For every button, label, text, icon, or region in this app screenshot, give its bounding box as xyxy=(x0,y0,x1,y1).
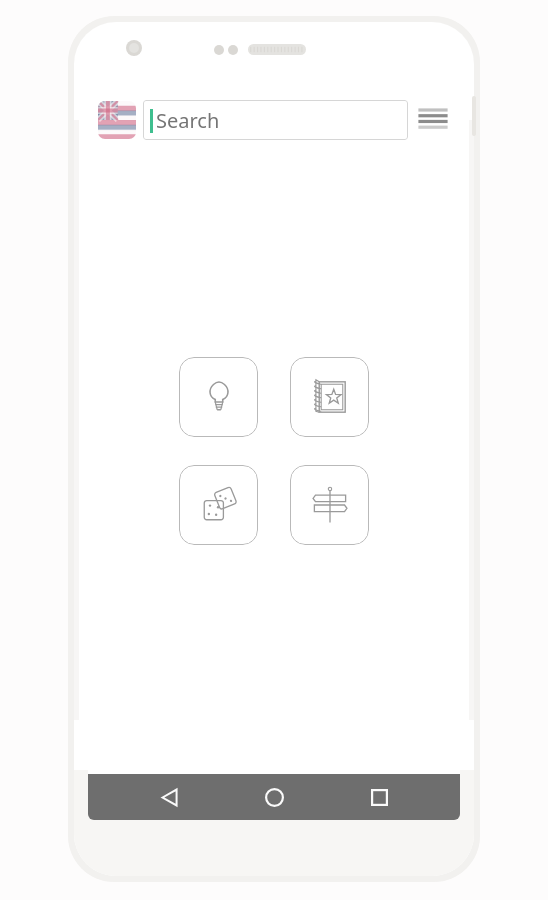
button[interactable]: Home xyxy=(251,774,297,820)
button[interactable]: Notebook xyxy=(290,357,369,437)
button[interactable]: Change language xyxy=(98,101,136,139)
button[interactable]: Search xyxy=(143,100,408,140)
button[interactable]: Directions xyxy=(290,465,369,545)
staticText: Search xyxy=(156,107,220,134)
button[interactable]: Menu xyxy=(418,103,448,137)
button[interactable]: Dice xyxy=(179,465,258,545)
button[interactable]: Recent apps xyxy=(356,774,402,820)
button[interactable]: Ideas xyxy=(179,357,258,437)
button[interactable]: Back xyxy=(147,774,193,820)
